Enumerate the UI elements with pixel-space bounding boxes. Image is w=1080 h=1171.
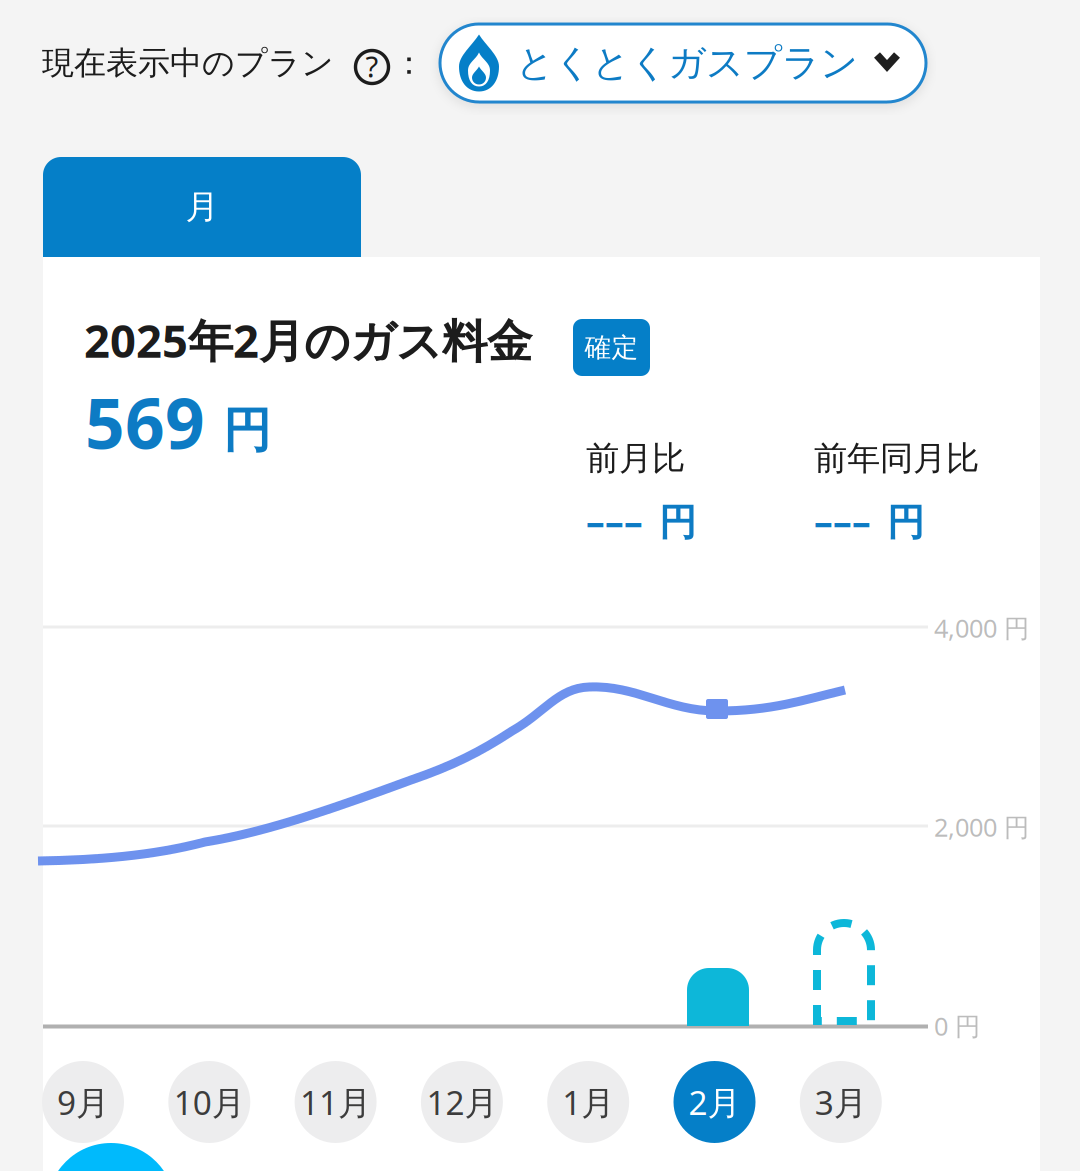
button[interactable]: 3月 [800,1061,882,1143]
staticText: 2025年2月のガス料金 [84,310,532,370]
staticText: ? [365,46,378,85]
staticText: 10月 [174,1080,245,1124]
button[interactable]: とくとくガスプラン [440,24,926,102]
staticText: ––– [586,496,643,545]
button[interactable]: 10月 [168,1061,250,1143]
staticText: 3月 [815,1080,867,1124]
staticText: 円 [659,500,696,546]
staticText: ： [393,43,425,83]
button[interactable]: 9月 [42,1061,124,1143]
staticText: 現在表示中のプラン [42,43,334,83]
staticText: ––– [814,496,871,545]
staticText: 1月 [562,1080,614,1124]
button[interactable]: 月 [43,157,361,257]
staticText: 11月 [300,1080,371,1124]
staticText: 4,000 円 [934,611,1029,645]
staticText: 月 [185,186,218,227]
staticText: 0 円 [934,1009,980,1043]
button[interactable]: 確定 [573,319,650,376]
staticText: 確定 [584,331,638,364]
staticText: 2,000 円 [934,810,1029,844]
staticText: 569 [85,376,205,468]
button[interactable]: 2月 [673,1061,755,1143]
button[interactable]: 11月 [295,1061,377,1143]
staticText: 前月比 [586,438,685,479]
staticText: 2月 [688,1080,740,1124]
button[interactable]: 12月 [421,1061,503,1143]
staticText: とくとくガスプラン [516,40,858,86]
button[interactable]: Chat support [47,1143,175,1171]
button[interactable]: 1月 [547,1061,629,1143]
staticText: 9月 [57,1080,109,1124]
staticText: 前年同月比 [814,438,979,479]
staticText: 円 [887,500,924,546]
staticText: 円 [223,401,271,460]
staticText: 12月 [426,1080,497,1124]
